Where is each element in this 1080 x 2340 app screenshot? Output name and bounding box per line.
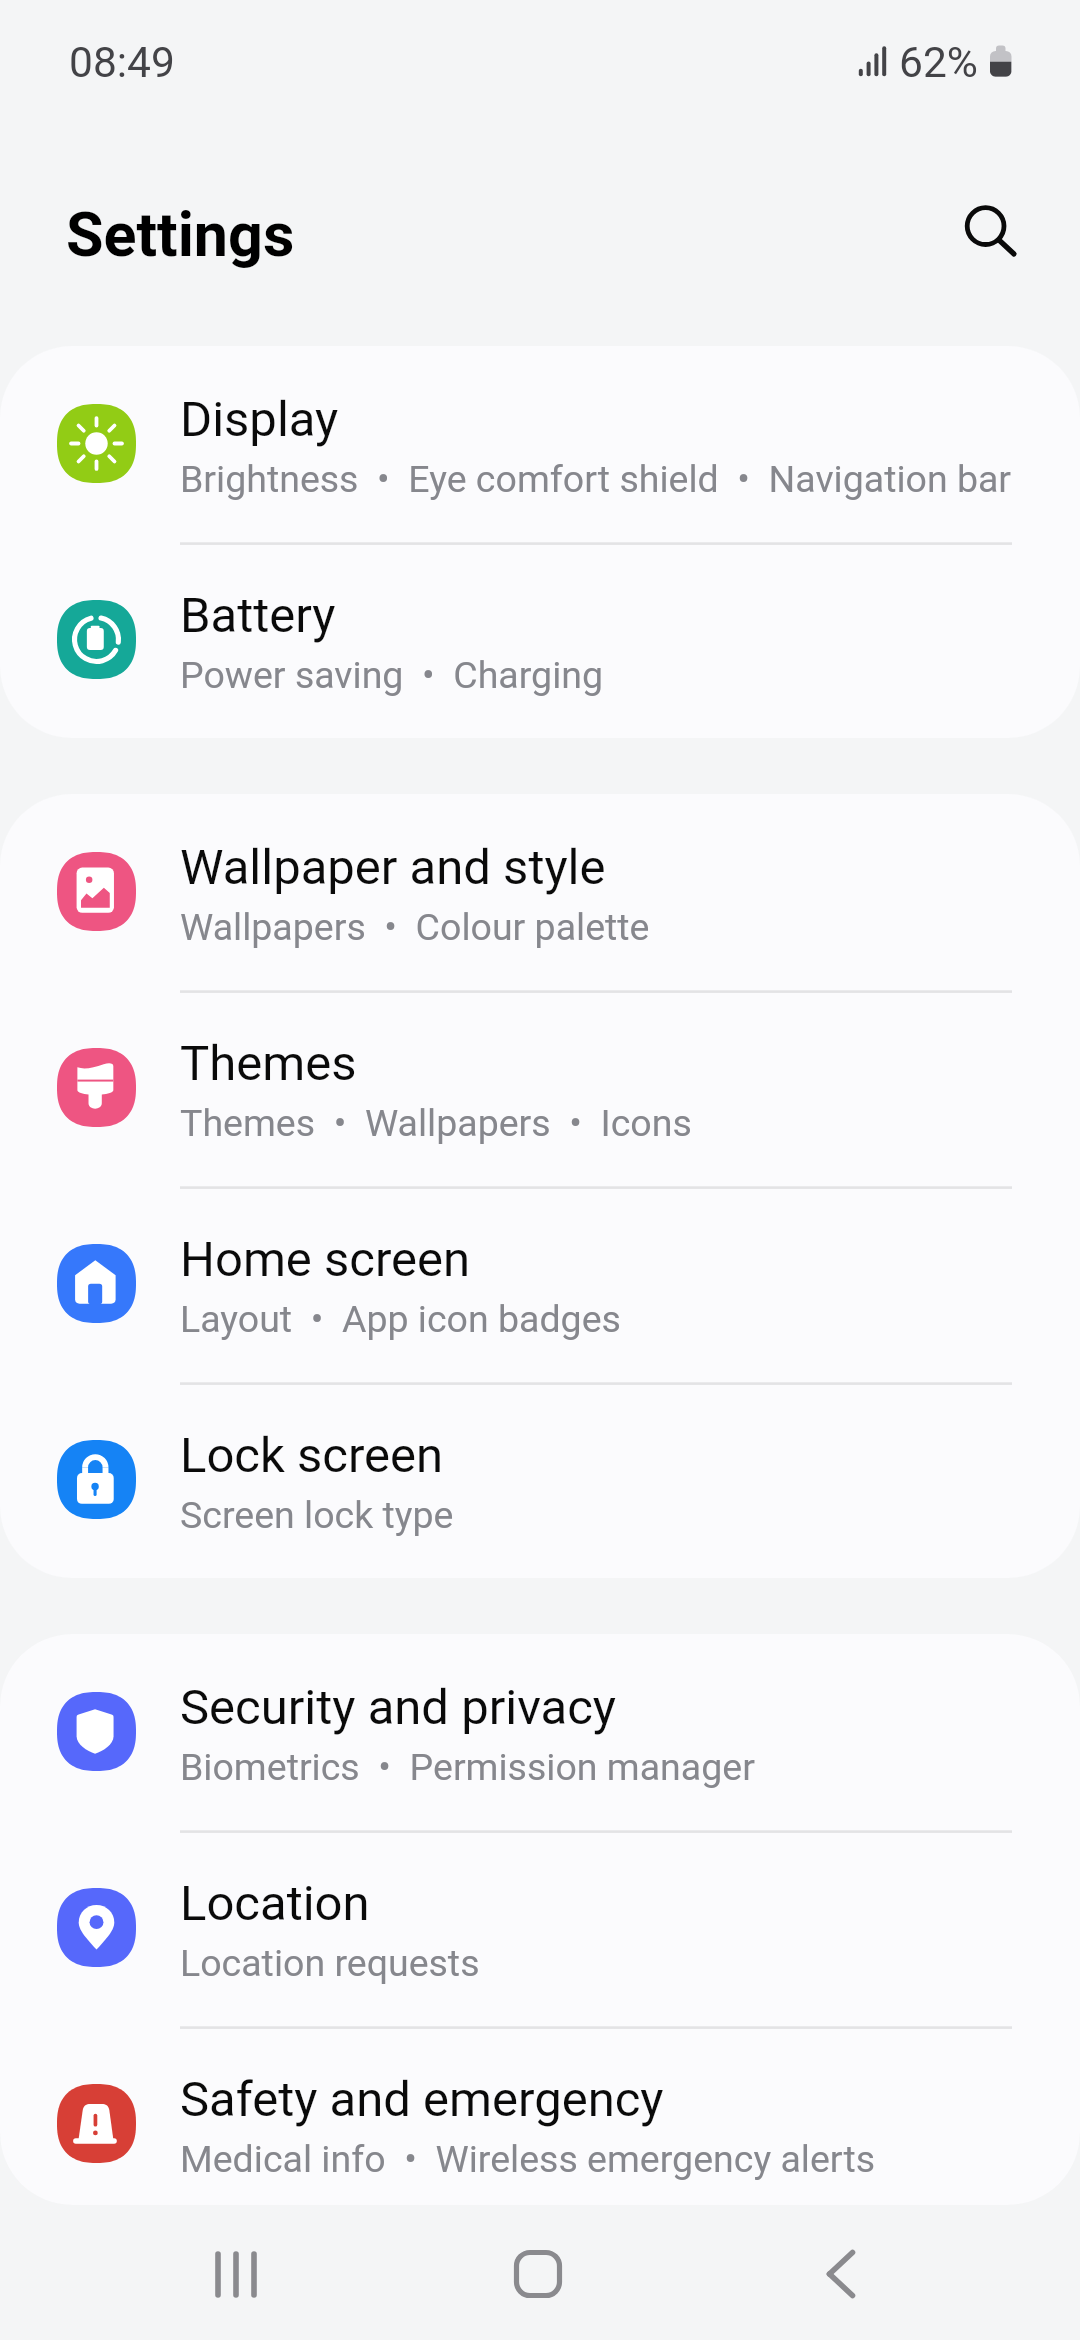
staticText: Layout • App icon badges xyxy=(180,1297,621,1341)
button[interactable]: Search xyxy=(930,171,1040,281)
staticText: Security and privacy xyxy=(180,1679,617,1736)
staticText: Wallpapers • Colour palette xyxy=(180,905,650,949)
button[interactable]: Display xyxy=(0,346,1080,542)
staticText: Themes xyxy=(180,1035,357,1092)
button[interactable]: Recent apps xyxy=(166,2204,306,2340)
staticText: Screen lock type xyxy=(180,1493,454,1537)
button[interactable]: Security and privacy xyxy=(0,1634,1080,1830)
staticText: Power saving • Charging xyxy=(180,653,604,697)
staticText: Medical info • Wireless emergency alerts xyxy=(180,2137,876,2181)
staticText: Location requests xyxy=(180,1941,480,1985)
button[interactable]: Safety and emergency xyxy=(0,2026,1080,2205)
staticText: Lock screen xyxy=(180,1427,444,1484)
button[interactable]: Back xyxy=(771,2204,911,2340)
button[interactable]: Lock screen xyxy=(0,1382,1080,1578)
staticText: Home screen xyxy=(180,1231,471,1288)
button[interactable]: Location xyxy=(0,1830,1080,2026)
staticText: Brightness • Eye comfort shield • Naviga… xyxy=(180,457,1012,501)
staticText: 08:49 xyxy=(69,38,175,88)
staticText: Biometrics • Permission manager xyxy=(180,1745,755,1789)
button[interactable]: Home screen xyxy=(0,1186,1080,1382)
button[interactable]: Themes xyxy=(0,990,1080,1186)
staticText: Display xyxy=(180,391,339,448)
staticText: Wallpaper and style xyxy=(180,839,606,896)
staticText: Battery xyxy=(180,587,336,644)
button[interactable]: Wallpaper and style xyxy=(0,794,1080,990)
button[interactable]: Home xyxy=(468,2204,608,2340)
staticText: Themes • Wallpapers • Icons xyxy=(180,1101,692,1145)
staticText: 62% xyxy=(899,38,978,88)
staticText: Location xyxy=(180,1875,370,1932)
button[interactable]: Battery xyxy=(0,542,1080,738)
staticText: Settings xyxy=(66,199,295,270)
staticText: Safety and emergency xyxy=(180,2071,664,2128)
